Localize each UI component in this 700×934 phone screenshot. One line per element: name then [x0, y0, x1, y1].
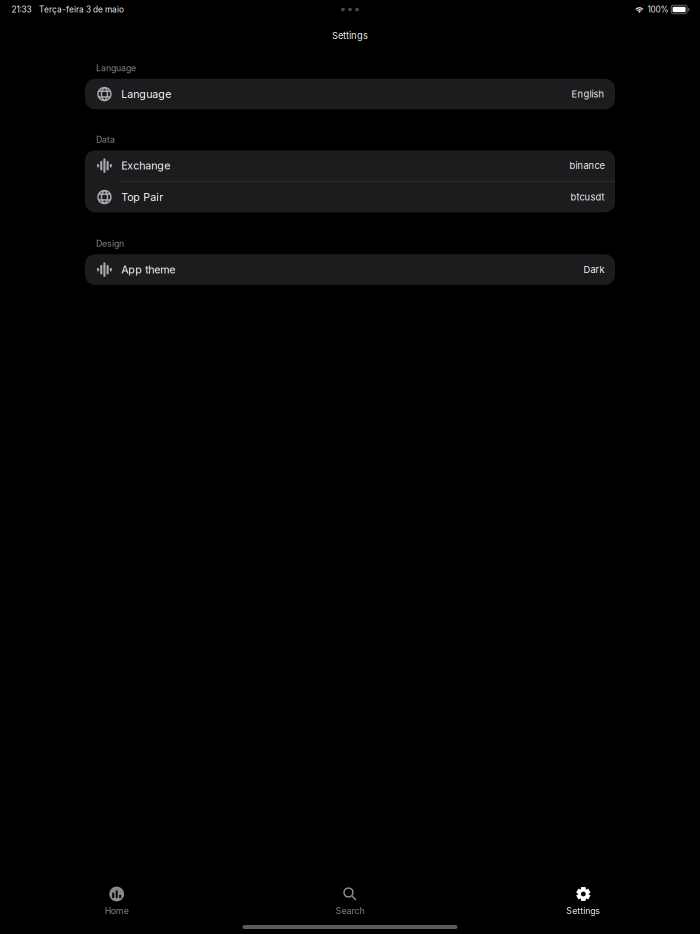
staticText: 21:33	[12, 4, 32, 14]
button[interactable]: Language	[85, 79, 615, 109]
staticText: Terça-feira 3 de maio	[39, 4, 124, 14]
staticText: Dark	[584, 264, 605, 275]
staticText: App theme	[121, 263, 175, 276]
staticText: Settings	[332, 30, 368, 41]
staticText: btcusdt	[571, 191, 605, 203]
staticText: binance	[570, 160, 605, 171]
staticText: Top Pair	[121, 191, 163, 203]
staticText: Data	[96, 134, 115, 145]
button[interactable]: Home	[0, 886, 233, 916]
button[interactable]: App theme	[85, 254, 615, 285]
button[interactable]: Top Pair	[85, 182, 615, 212]
button[interactable]: Settings	[467, 886, 700, 916]
staticText: Language	[121, 88, 171, 100]
staticText: Exchange	[121, 159, 170, 172]
button[interactable]: Exchange	[85, 150, 615, 181]
button[interactable]: Search	[233, 886, 467, 916]
staticText: English	[572, 88, 605, 100]
staticText: Design	[96, 238, 124, 249]
staticText: Language	[96, 63, 136, 73]
staticText: Home	[105, 905, 129, 916]
staticText: Settings	[566, 905, 600, 916]
staticText: 100%	[647, 4, 668, 14]
staticText: Search	[335, 905, 364, 916]
